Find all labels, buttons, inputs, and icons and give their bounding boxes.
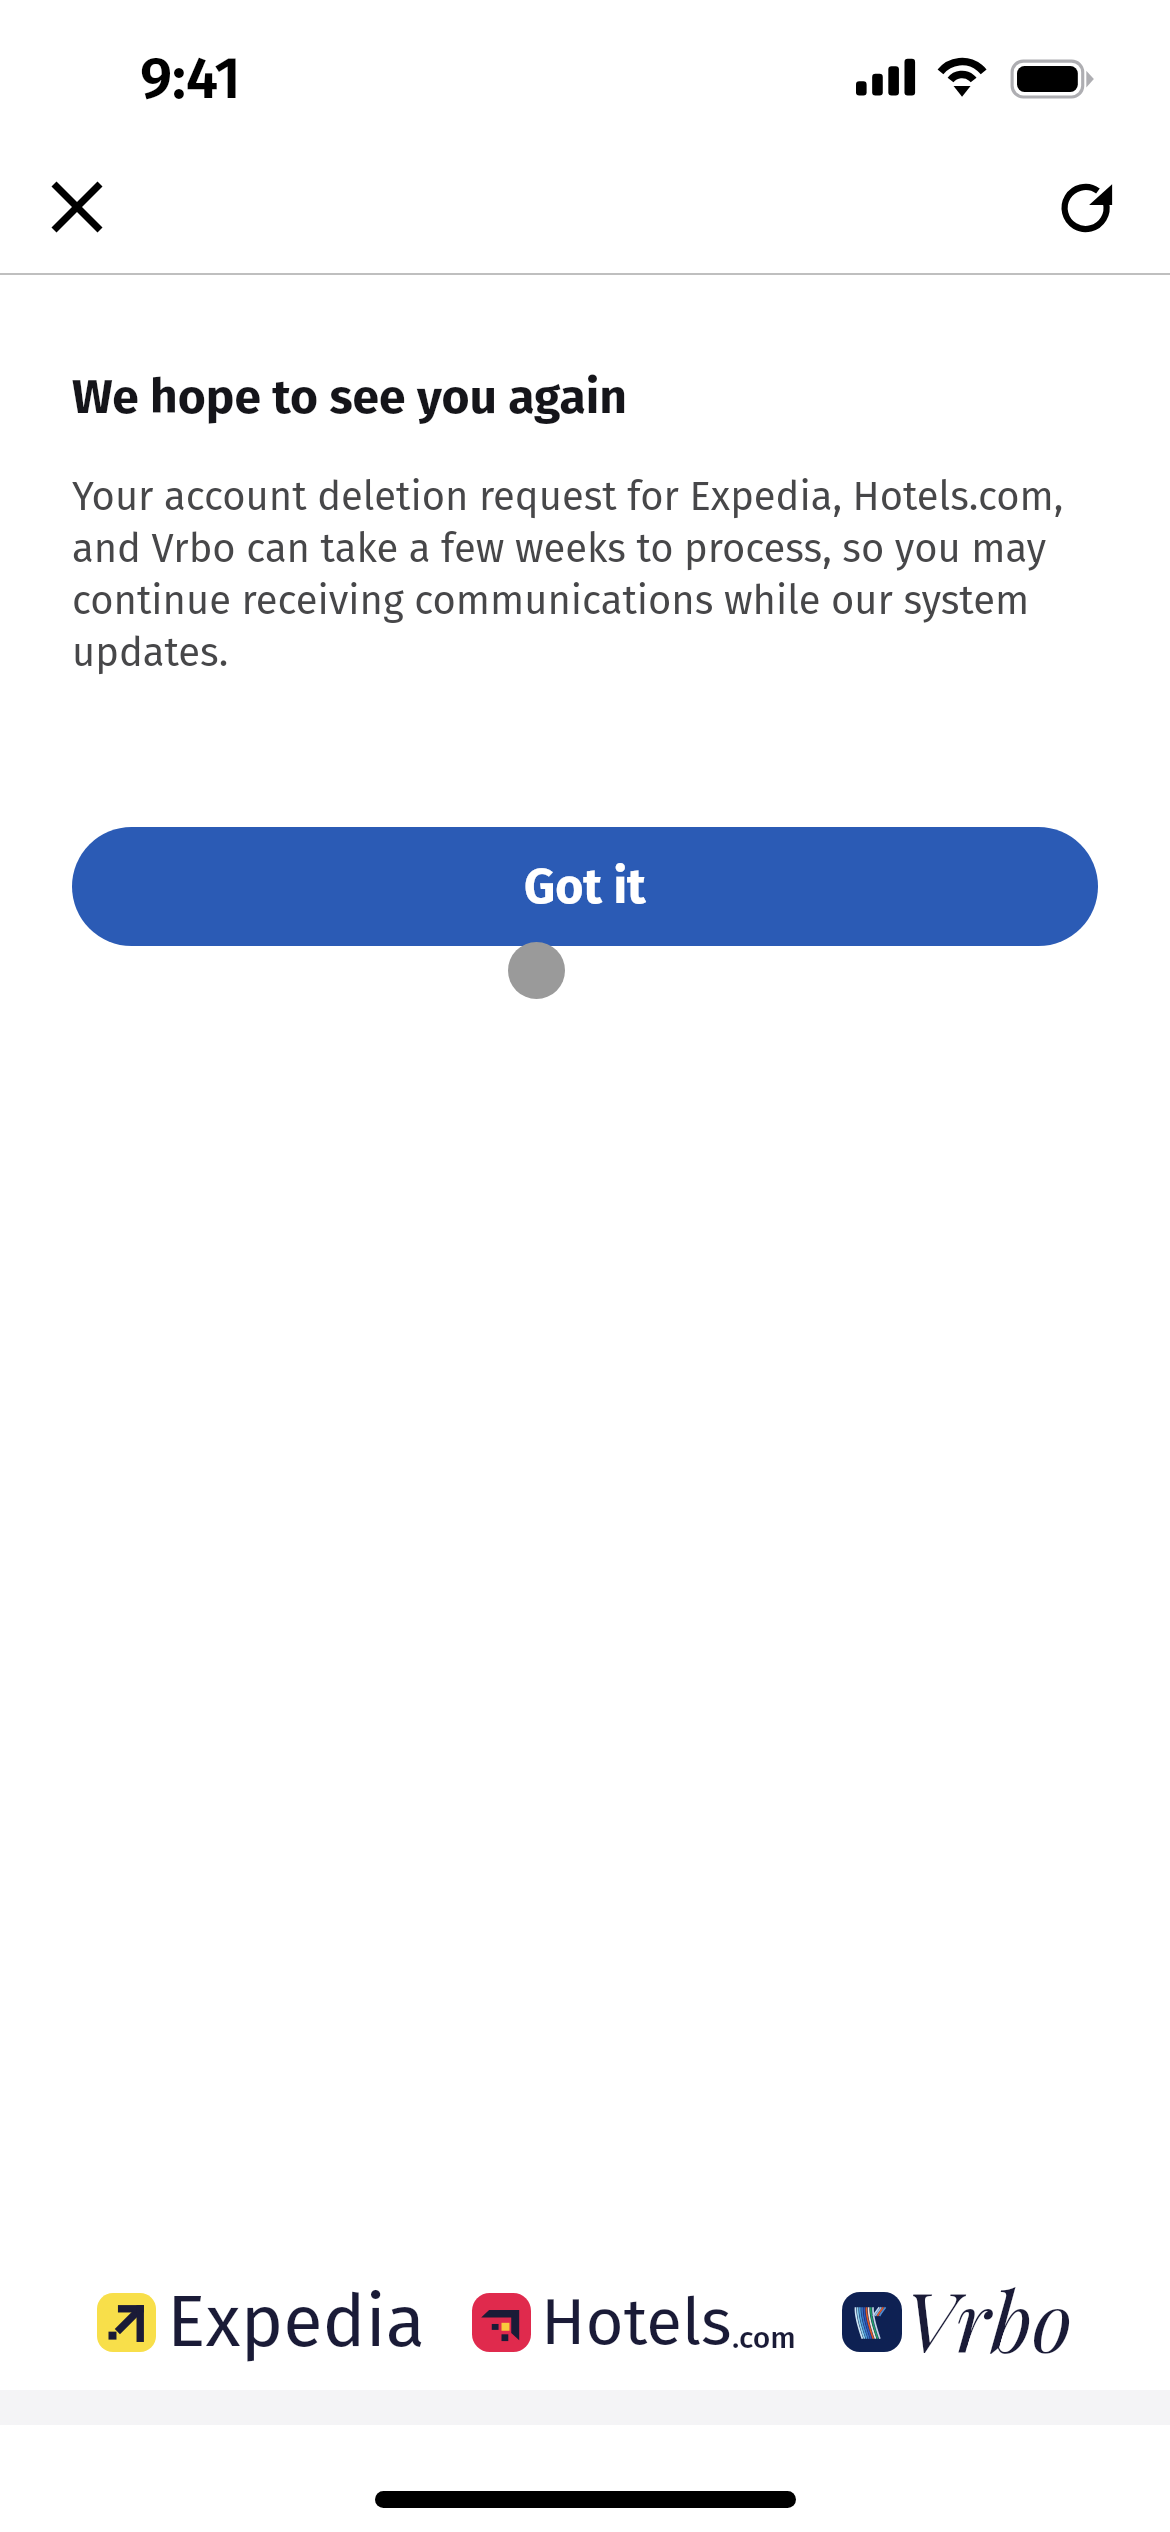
staticText: Vrbo: [905, 2264, 1073, 2374]
staticText: Your account deletion request for Expedi…: [72, 469, 1098, 677]
button[interactable]: Close: [17, 147, 137, 267]
staticText: 9:41: [140, 44, 241, 114]
staticText: .com: [732, 2320, 796, 2356]
staticText: Got it: [524, 858, 646, 916]
button[interactable]: Refresh: [1029, 150, 1149, 270]
staticText: Expedia: [167, 2279, 425, 2365]
staticText: Hotels: [541, 2283, 732, 2361]
staticText: We hope to see you again: [72, 362, 627, 428]
button[interactable]: Got it: [72, 827, 1098, 946]
